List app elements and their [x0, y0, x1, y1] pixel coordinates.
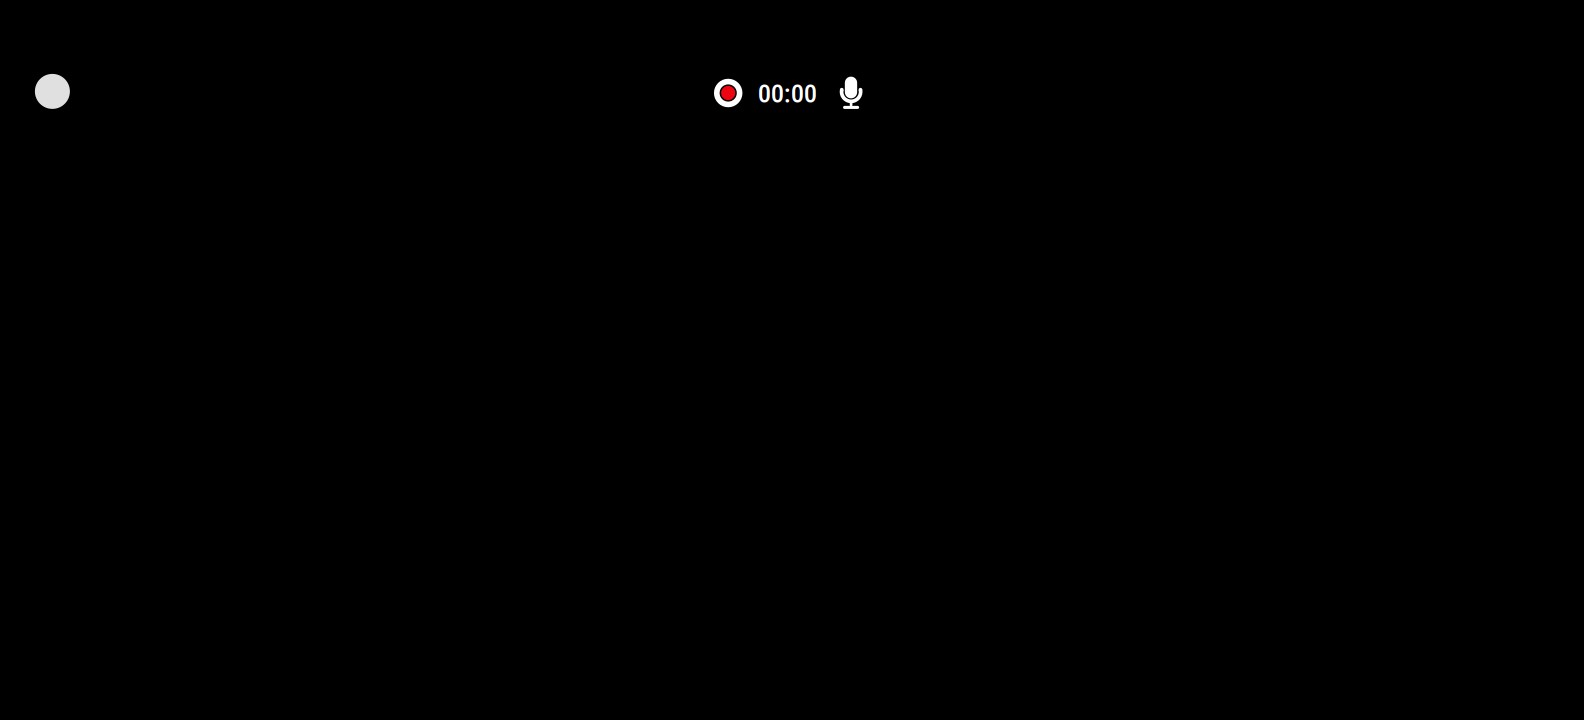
- button[interactable]: Stop recording: [706, 71, 750, 115]
- button[interactable]: Microphone: [832, 68, 870, 116]
- button[interactable]: Capture: [30, 69, 75, 114]
- staticText: 00:00: [758, 78, 817, 109]
